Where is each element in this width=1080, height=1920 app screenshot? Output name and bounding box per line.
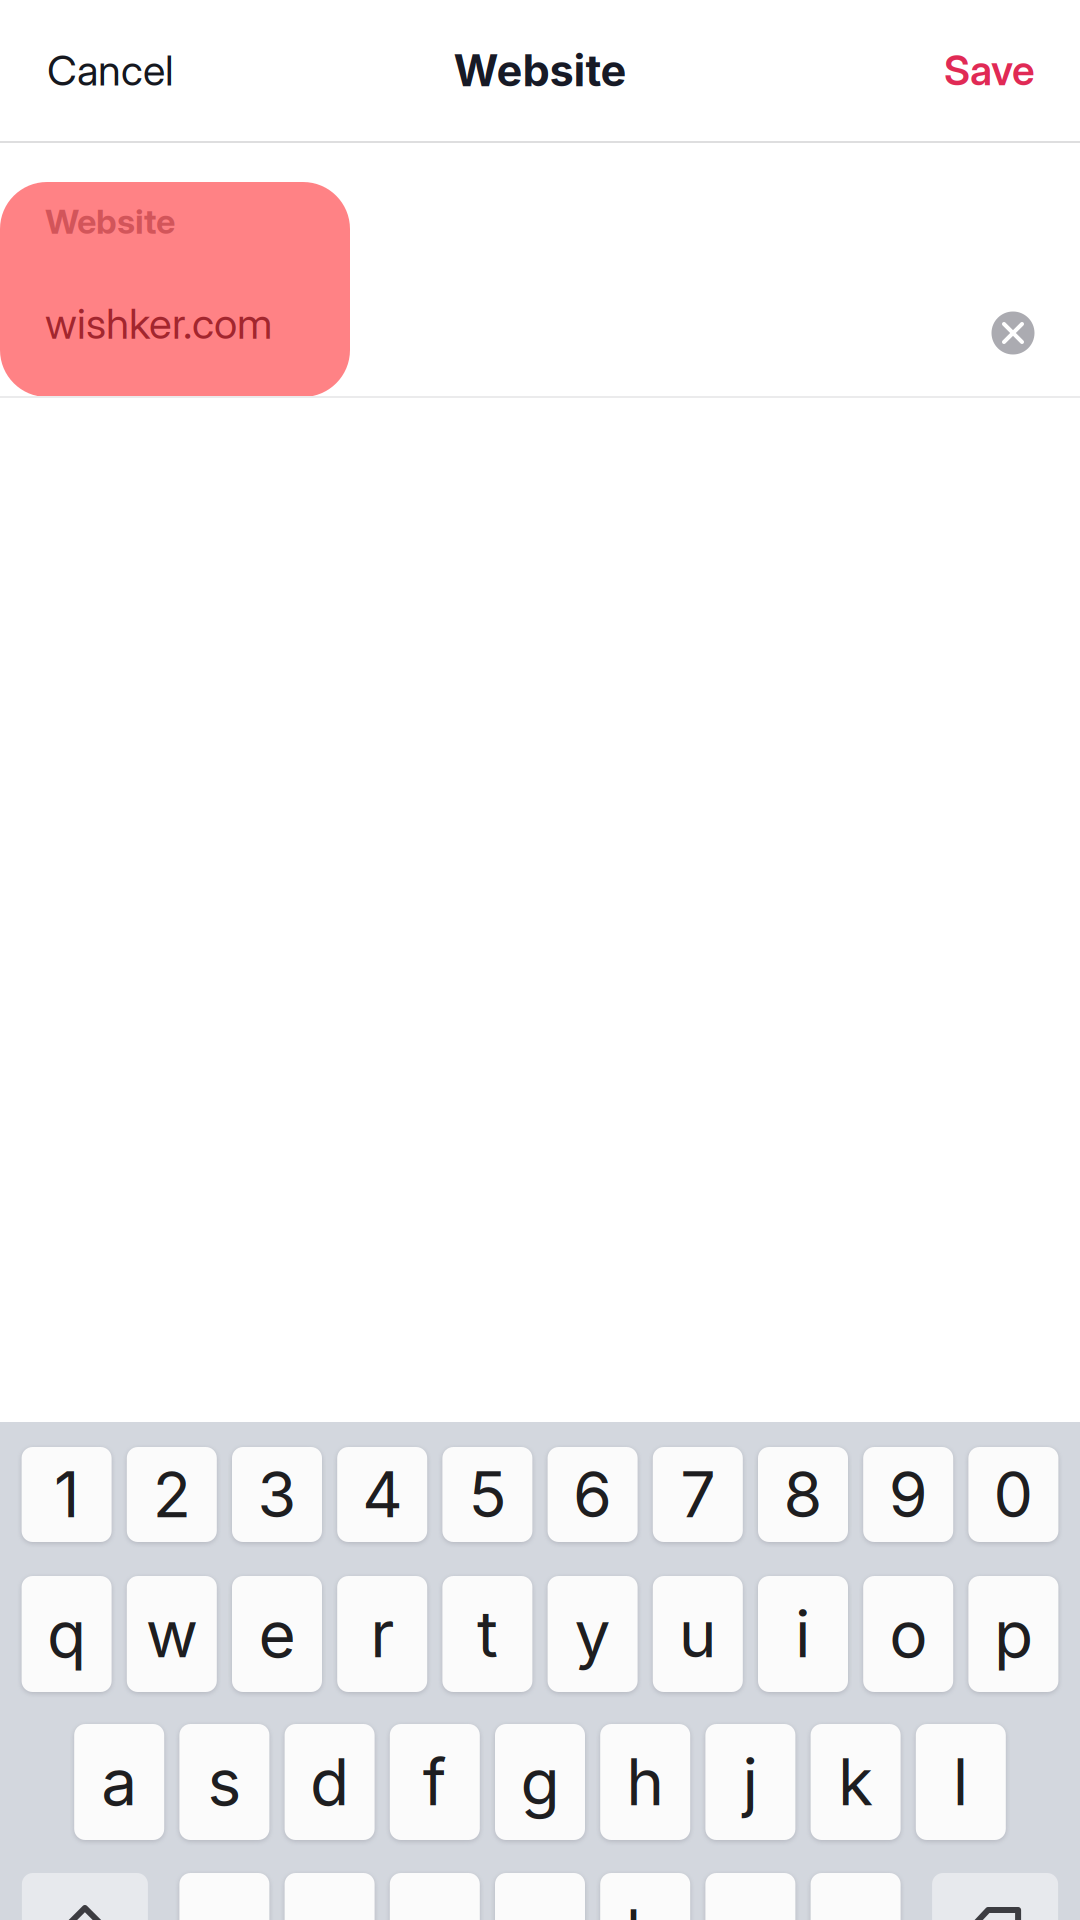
staticText: u: [679, 1595, 717, 1673]
button[interactable]: l: [916, 1724, 1006, 1840]
button[interactable]: s: [179, 1724, 269, 1840]
button[interactable]: e: [232, 1576, 322, 1692]
staticText: g: [520, 1743, 559, 1821]
staticText: 7: [680, 1457, 715, 1532]
button[interactable]: m: [811, 1873, 901, 1920]
staticText: i: [795, 1595, 811, 1673]
button[interactable]: p: [968, 1576, 1058, 1692]
staticText: Cancel: [47, 45, 174, 95]
button[interactable]: c: [390, 1873, 480, 1920]
staticText: d: [310, 1743, 349, 1821]
staticText: a: [101, 1743, 137, 1821]
staticText: j: [742, 1743, 758, 1821]
staticText: l: [953, 1743, 969, 1821]
button[interactable]: r: [337, 1576, 427, 1692]
staticText: t: [477, 1595, 498, 1673]
button[interactable]: d: [285, 1724, 375, 1840]
button[interactable]: Clear text: [978, 298, 1048, 368]
button[interactable]: j: [705, 1724, 795, 1840]
staticText: Website: [45, 201, 175, 242]
staticText: o: [889, 1595, 927, 1673]
button[interactable]: f: [390, 1724, 480, 1840]
button[interactable]: 7: [653, 1447, 743, 1542]
button[interactable]: 1: [22, 1447, 112, 1542]
button[interactable]: 2: [127, 1447, 217, 1542]
staticText: 4: [362, 1457, 402, 1532]
button[interactable]: a: [74, 1724, 164, 1840]
button[interactable]: b: [600, 1873, 690, 1920]
button[interactable]: o: [863, 1576, 953, 1692]
staticText: h: [626, 1743, 664, 1821]
button[interactable]: i: [758, 1576, 848, 1692]
button[interactable]: Cancel: [0, 23, 204, 117]
staticText: s: [207, 1743, 241, 1821]
staticText: 6: [573, 1457, 612, 1532]
button[interactable]: y: [548, 1576, 638, 1692]
button[interactable]: h: [600, 1724, 690, 1840]
staticText: e: [258, 1595, 295, 1673]
button[interactable]: w: [127, 1576, 217, 1692]
staticText: 8: [783, 1457, 822, 1532]
button[interactable]: v: [495, 1873, 585, 1920]
button[interactable]: 6: [548, 1447, 638, 1542]
staticText: 9: [889, 1457, 928, 1532]
staticText: 3: [257, 1457, 296, 1532]
button[interactable]: 9: [863, 1447, 953, 1542]
staticText: 2: [153, 1457, 191, 1532]
button[interactable]: q: [22, 1576, 112, 1692]
button[interactable]: x: [285, 1873, 375, 1920]
button[interactable]: 0: [968, 1447, 1058, 1542]
staticText: w: [146, 1595, 198, 1673]
button[interactable]: 8: [758, 1447, 848, 1542]
staticText: Save: [944, 46, 1035, 95]
button[interactable]: Delete: [932, 1873, 1058, 1920]
button[interactable]: Shift: [22, 1873, 148, 1920]
staticText: b: [626, 1894, 665, 1920]
button[interactable]: z: [179, 1873, 269, 1920]
button[interactable]: t: [442, 1576, 532, 1692]
staticText: f: [423, 1743, 447, 1821]
button[interactable]: k: [811, 1724, 901, 1840]
staticText: 0: [993, 1457, 1033, 1532]
staticText: 5: [468, 1457, 506, 1532]
staticText: k: [838, 1743, 873, 1821]
button[interactable]: g: [495, 1724, 585, 1840]
button[interactable]: 3: [232, 1447, 322, 1542]
button[interactable]: 4: [337, 1447, 427, 1542]
staticText: 1: [54, 1457, 79, 1532]
button[interactable]: Save: [914, 24, 1080, 117]
staticText: r: [370, 1595, 394, 1673]
button[interactable]: u: [653, 1576, 743, 1692]
staticText: p: [994, 1595, 1033, 1673]
button[interactable]: n: [705, 1873, 795, 1920]
staticText: q: [47, 1595, 86, 1673]
button[interactable]: Website: [0, 143, 1080, 396]
button[interactable]: 5: [442, 1447, 532, 1542]
staticText: Website: [453, 44, 626, 97]
staticText: y: [575, 1595, 611, 1673]
staticText: wishker.com: [45, 298, 272, 349]
